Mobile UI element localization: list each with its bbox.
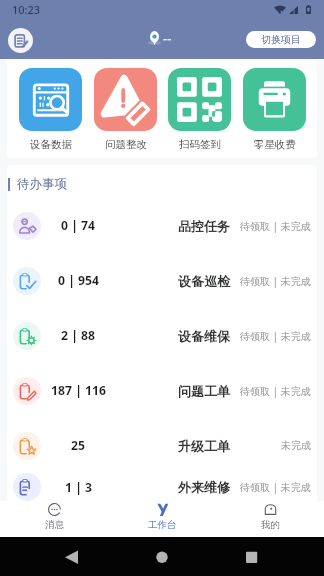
button[interactable]: 消息 <box>0 501 108 537</box>
button[interactable]: 切换项目 <box>246 31 316 48</box>
button[interactable]: Notes <box>8 28 33 53</box>
staticText: 品控任务 <box>178 218 230 234</box>
staticText: 187 | 116 <box>51 382 106 399</box>
button[interactable]: 零星收费 <box>243 68 306 151</box>
staticText: -- <box>163 29 172 47</box>
staticText: 2 | 88 <box>61 327 95 344</box>
staticText: 待领取 | 未完成 <box>240 274 311 288</box>
staticText: 25 <box>71 437 85 454</box>
button[interactable]: 设备数据 <box>19 68 82 151</box>
staticText: 待办事项 <box>17 176 67 192</box>
staticText: 工作台 <box>148 519 177 531</box>
staticText: 零星收费 <box>254 138 296 151</box>
staticText: 0 | 74 <box>61 217 95 234</box>
staticText: 1 | 3 <box>65 479 92 496</box>
button[interactable]: Recents <box>237 542 267 572</box>
button[interactable]: 0 | 954 <box>7 253 317 308</box>
button[interactable]: 工作台 <box>108 501 216 537</box>
button[interactable]: 扫码签到 <box>168 68 231 151</box>
staticText: 我的 <box>261 519 280 531</box>
staticText: 设备维保 <box>178 328 230 344</box>
staticText: 待领取 | 未完成 <box>240 480 311 494</box>
button[interactable]: 我的 <box>216 501 324 537</box>
staticText: 待领取 | 未完成 <box>240 219 311 233</box>
staticText: 设备巡检 <box>178 273 230 289</box>
staticText: 未完成 <box>281 439 311 452</box>
staticText: 0 | 954 <box>58 272 99 289</box>
button[interactable]: Back <box>56 542 86 572</box>
staticText: 待领取 | 未完成 <box>240 384 311 398</box>
button[interactable]: Home <box>147 542 177 572</box>
staticText: 10:23 <box>12 2 41 17</box>
staticText: 问题整改 <box>105 138 147 151</box>
staticText: 待领取 | 未完成 <box>240 329 311 343</box>
button[interactable]: 187 | 116 <box>7 363 317 418</box>
staticText: 设备数据 <box>30 138 72 151</box>
button[interactable]: 2 | 88 <box>7 308 317 363</box>
staticText: 切换项目 <box>261 33 301 46</box>
button[interactable]: 25 <box>7 418 317 473</box>
button[interactable]: 1 | 3 <box>7 473 317 501</box>
staticText: 升级工单 <box>178 438 230 454</box>
button[interactable]: 0 | 74 <box>7 198 317 253</box>
staticText: 问题工单 <box>178 383 230 399</box>
button[interactable]: 问题整改 <box>94 68 157 151</box>
staticText: 外来维修 <box>178 479 230 495</box>
staticText: 扫码签到 <box>179 138 221 151</box>
staticText: 消息 <box>45 519 64 531</box>
